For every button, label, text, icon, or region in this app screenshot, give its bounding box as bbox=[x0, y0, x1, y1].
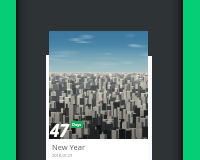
staticText: 47 bbox=[50, 119, 69, 139]
staticText: Days bbox=[72, 122, 82, 127]
staticText: New Year bbox=[52, 142, 86, 152]
staticText: 2018-01-01 bbox=[52, 153, 73, 158]
button[interactable]: 47 bbox=[49, 31, 148, 160]
